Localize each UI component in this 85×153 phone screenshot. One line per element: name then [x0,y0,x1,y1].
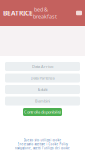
button[interactable]: Controlla disponibilità [23,108,62,116]
button[interactable]: Menu [76,11,82,15]
staticText: È necessario accettare i Cookie Policy [17,142,67,146]
staticText: Data Partenza [30,75,54,81]
staticText: Bambini [35,98,50,104]
staticText: Questo sito utilizza i cookie [23,138,61,142]
staticText: navigazione, accetti l'utilizzo dei cook… [15,146,70,150]
staticText: bed & breakfast [33,6,57,20]
staticText: Adulti [37,87,47,92]
staticText: BEATRICE [3,9,33,17]
staticText: Data Arrivo [32,64,53,69]
staticText: Controlla disponibilità [24,109,61,115]
